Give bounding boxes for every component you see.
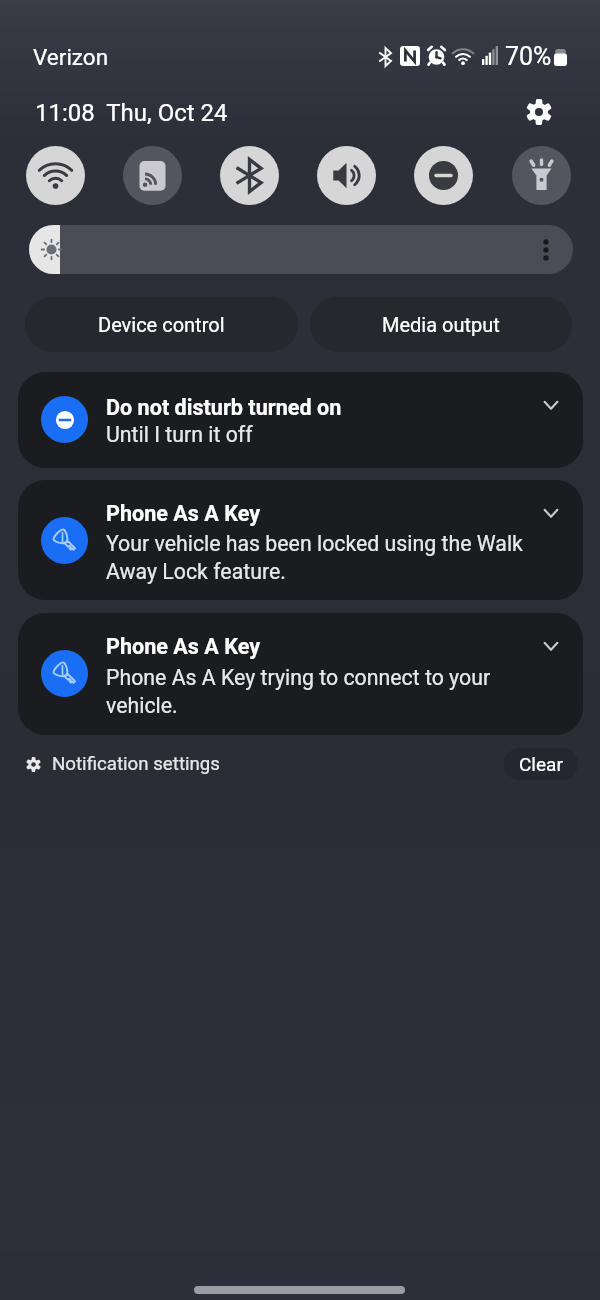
staticText: vehicle. [106,693,178,718]
button[interactable]: Screen cast [123,146,182,205]
staticText: 11:08 Thu, Oct 24 [35,99,228,127]
button[interactable]: Phone As A Key [18,613,583,735]
staticText: Verizon [33,44,109,70]
button[interactable]: Expand [533,495,569,531]
staticText: Media output [382,313,500,336]
button[interactable]: Device control [25,297,298,352]
button[interactable]: Brightness [29,225,573,274]
staticText: Clear [519,753,563,775]
button[interactable]: Expand [533,387,569,423]
button[interactable]: Clear [504,748,578,780]
staticText: Until I turn it off [106,422,253,447]
button[interactable]: Media output [310,297,572,352]
button[interactable]: Do not disturb turned on [18,372,583,468]
button[interactable]: Do not disturb [414,146,473,205]
staticText: Phone As A Key [106,634,261,659]
staticText: Your vehicle has been locked using the W… [106,531,523,556]
staticText: Phone As A Key [106,501,261,526]
button[interactable]: Sound [317,146,376,205]
button[interactable]: Wi-Fi [26,146,85,205]
button[interactable]: Expand [533,628,569,664]
button[interactable]: Flashlight [512,146,571,205]
staticText: 70% [505,42,552,71]
button[interactable]: Bluetooth [220,146,279,205]
button[interactable]: Notification settings [26,748,221,780]
button[interactable]: Settings [520,93,558,131]
button[interactable]: Phone As A Key [18,480,583,600]
staticText: Device control [98,313,225,336]
staticText: Do not disturb turned on [106,395,342,420]
staticText: Phone As A Key trying to connect to your [106,665,491,690]
staticText: Notification settings [52,753,221,775]
staticText: Away Lock feature. [106,559,286,584]
